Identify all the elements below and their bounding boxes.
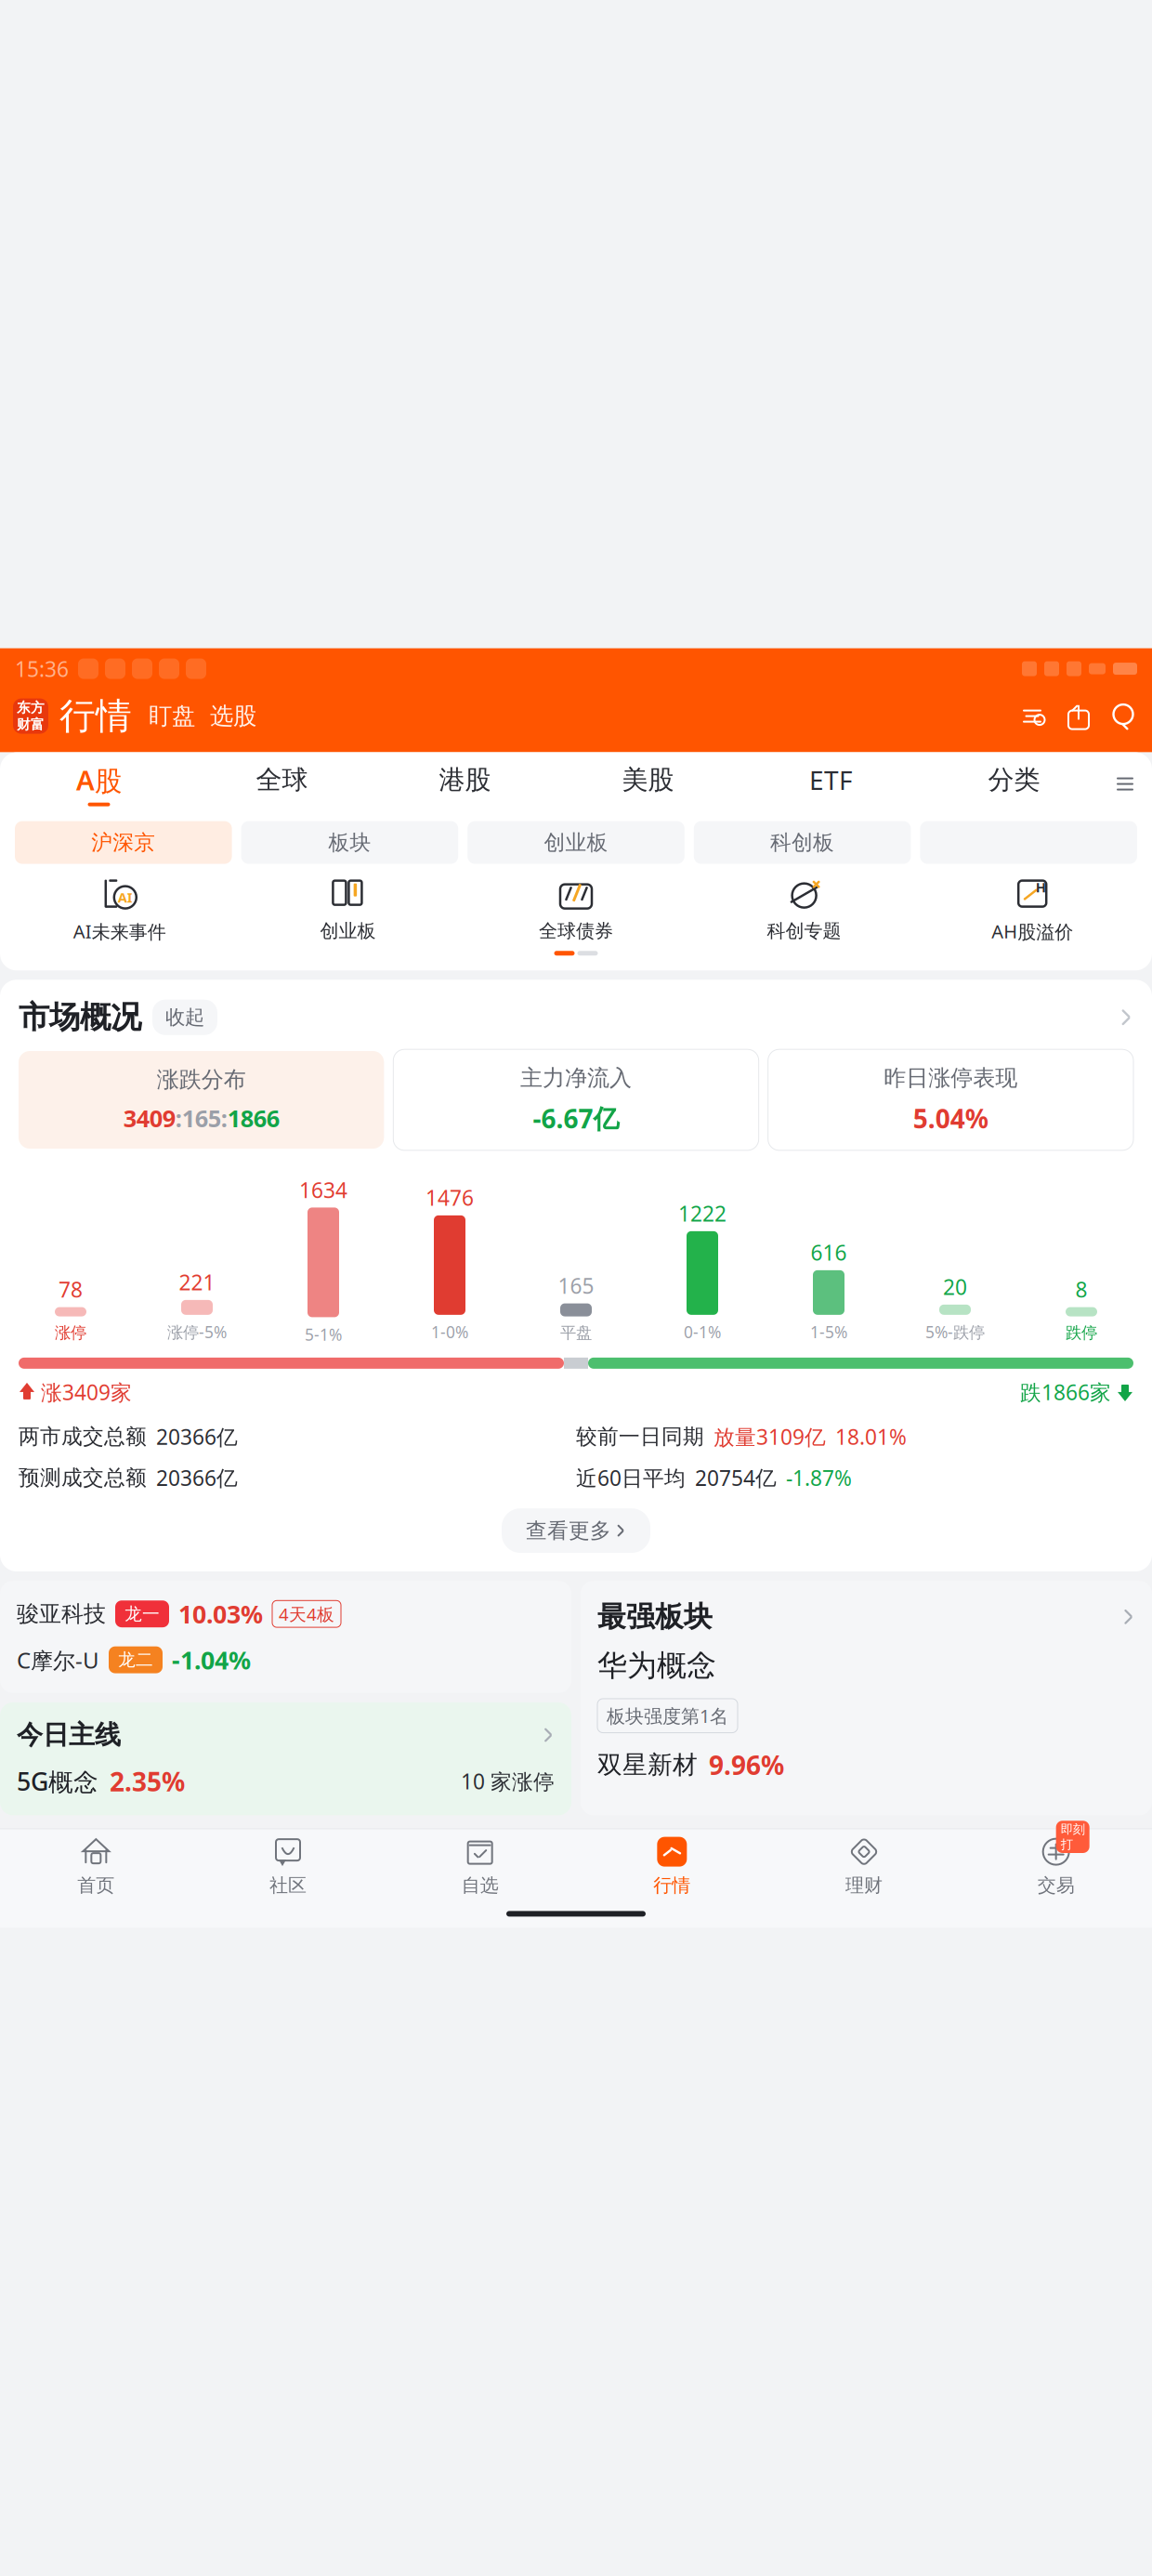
staticText: 盯盘 bbox=[149, 702, 195, 731]
button[interactable]: 创业板 bbox=[234, 878, 462, 942]
button[interactable]: 分享 bbox=[1065, 702, 1093, 730]
staticText: -6.67亿 bbox=[533, 1101, 619, 1136]
button[interactable]: 今日主线 bbox=[0, 1702, 571, 1815]
staticText: 近60日平均 bbox=[576, 1464, 686, 1492]
staticText: 4天4板 bbox=[279, 1602, 334, 1625]
staticText: 骏亚科技 bbox=[17, 1600, 106, 1628]
staticText: 即刻打 bbox=[1061, 1822, 1085, 1852]
staticText: 10 家涨停 bbox=[461, 1767, 555, 1795]
button[interactable]: 昨日涨停表现 bbox=[768, 1049, 1133, 1150]
staticText: 预测成交总额 bbox=[19, 1465, 147, 1491]
staticText: 20366亿 bbox=[156, 1423, 238, 1451]
staticText: 616 bbox=[811, 1238, 847, 1266]
staticText: 港股 bbox=[439, 764, 491, 796]
staticText: 5-1% bbox=[305, 1324, 342, 1345]
staticText: A股 bbox=[76, 762, 122, 798]
staticText: 板块 bbox=[328, 830, 371, 855]
staticText: 交易 bbox=[1037, 1874, 1075, 1897]
button[interactable]: 市场概况 bbox=[0, 980, 1152, 1049]
button[interactable]: 选股 bbox=[210, 702, 256, 731]
staticText: 78 bbox=[59, 1275, 83, 1303]
staticText: 5.04% bbox=[913, 1101, 988, 1136]
button[interactable]: 排序设置 bbox=[1018, 702, 1046, 730]
staticText: 板块强度第1名 bbox=[607, 1703, 728, 1728]
staticText: 放量3109亿 bbox=[713, 1423, 826, 1451]
staticText: 3409 bbox=[123, 1103, 175, 1134]
staticText: 查看更多 bbox=[526, 1518, 611, 1544]
staticText: 理财 bbox=[845, 1874, 883, 1897]
staticText: 5%-跌停 bbox=[925, 1321, 985, 1343]
staticText: : bbox=[221, 1103, 227, 1134]
button[interactable]: 自选 bbox=[384, 1836, 576, 1897]
staticText: 华为概念 bbox=[597, 1647, 716, 1684]
staticText: 165 bbox=[558, 1272, 594, 1300]
staticText: 涨3409家 bbox=[41, 1378, 132, 1406]
button[interactable]: 港股 bbox=[373, 760, 556, 808]
staticText: 20366亿 bbox=[156, 1464, 238, 1492]
staticText: 20754亿 bbox=[695, 1464, 777, 1492]
button[interactable]: 盯盘 bbox=[149, 702, 195, 731]
staticText: 双星新材 bbox=[597, 1750, 698, 1780]
staticText: 创业板 bbox=[320, 920, 376, 942]
staticText: 首页 bbox=[77, 1874, 115, 1897]
staticText: -1.04% bbox=[172, 1643, 251, 1676]
staticText: H bbox=[1036, 878, 1046, 896]
button[interactable]: 最强板块 bbox=[581, 1581, 1152, 1815]
staticText: AI未来事件 bbox=[73, 919, 166, 944]
staticText: 龙一 bbox=[124, 1603, 160, 1624]
button[interactable]: 涨跌分布 bbox=[19, 1051, 384, 1149]
button[interactable]: 主力净流入 bbox=[393, 1049, 759, 1150]
staticText: 1866 bbox=[227, 1103, 279, 1134]
button[interactable]: 社区 bbox=[192, 1836, 384, 1897]
button[interactable]: 东方财富 bbox=[13, 698, 48, 734]
button[interactable]: 科创板 bbox=[694, 821, 911, 864]
staticText: 社区 bbox=[269, 1874, 307, 1897]
button[interactable]: H bbox=[918, 877, 1146, 944]
staticText: 美股 bbox=[622, 764, 674, 796]
staticText: 跌停 bbox=[1066, 1323, 1097, 1343]
button[interactable]: 全球 bbox=[190, 760, 373, 808]
staticText: : bbox=[175, 1103, 182, 1134]
button[interactable]: 查看更多 bbox=[502, 1508, 650, 1553]
staticText: 涨跌分布 bbox=[157, 1066, 246, 1093]
button[interactable]: AI bbox=[6, 877, 234, 944]
button[interactable]: 创业板 bbox=[467, 821, 685, 864]
button[interactable]: 即刻打 bbox=[960, 1836, 1152, 1897]
button[interactable]: 搜索 bbox=[1111, 702, 1139, 730]
button[interactable]: 行情 bbox=[59, 694, 132, 738]
button[interactable]: ETF bbox=[740, 760, 923, 808]
button[interactable]: A股 bbox=[7, 760, 190, 808]
button[interactable]: 首页 bbox=[0, 1836, 192, 1897]
staticText: 165 bbox=[182, 1103, 221, 1134]
staticText: 15:36 bbox=[15, 655, 69, 683]
staticText: 主力净流入 bbox=[520, 1064, 632, 1092]
staticText: 分类 bbox=[988, 764, 1040, 796]
button[interactable]: 骏亚科技 bbox=[0, 1581, 571, 1693]
button[interactable]: 理财 bbox=[768, 1836, 960, 1897]
button[interactable]: 全球债券 bbox=[462, 878, 690, 942]
staticText: AH股溢价 bbox=[991, 919, 1073, 944]
staticText: 市场概况 bbox=[19, 998, 141, 1036]
staticText: 涨停-5% bbox=[167, 1321, 227, 1343]
button[interactable]: 更多分类 bbox=[1106, 760, 1145, 808]
button[interactable]: 分类 bbox=[923, 760, 1106, 808]
staticText: 财富 bbox=[17, 716, 45, 733]
staticText: -1.87% bbox=[786, 1464, 852, 1492]
staticText: 龙二 bbox=[118, 1649, 153, 1670]
button[interactable]: 板块 bbox=[241, 821, 458, 864]
button[interactable]: 行情 bbox=[576, 1836, 768, 1897]
staticText: 东方 bbox=[17, 699, 45, 716]
staticText: 5G概念 bbox=[17, 1765, 98, 1798]
staticText: 1476 bbox=[425, 1184, 474, 1212]
staticText: 1634 bbox=[299, 1176, 347, 1204]
staticText: 2.35% bbox=[110, 1764, 185, 1799]
staticText: 昨日涨停表现 bbox=[884, 1064, 1018, 1092]
staticText: 创业板 bbox=[544, 830, 608, 855]
button[interactable]: 科创专题 bbox=[690, 878, 918, 942]
staticText: 10.03% bbox=[178, 1597, 263, 1630]
staticText: ETF bbox=[809, 762, 853, 797]
staticText: 全球债券 bbox=[539, 920, 613, 942]
button[interactable]: 美股 bbox=[556, 760, 740, 808]
button[interactable]: 沪深京 bbox=[15, 821, 232, 864]
